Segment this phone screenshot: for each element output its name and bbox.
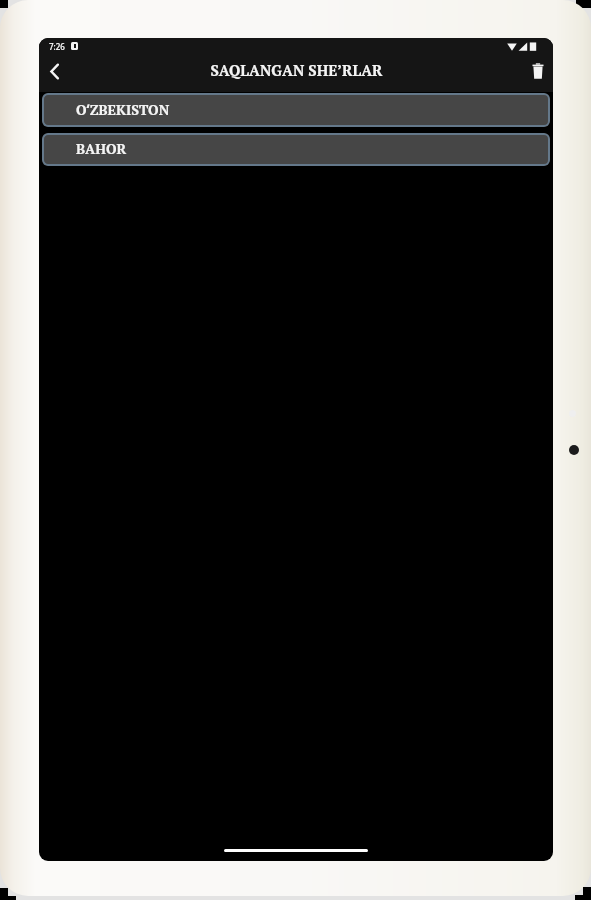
staticText: 7:26 [49, 41, 65, 52]
button[interactable]: BAHOR [42, 133, 550, 166]
button[interactable]: OʻZBEKISTON [42, 93, 550, 127]
staticText: OʻZBEKISTON [76, 100, 170, 119]
staticText: SAQLANGAN SHE’RLAR [210, 60, 383, 80]
staticText: BAHOR [76, 139, 127, 158]
button[interactable]: Back [39, 56, 69, 86]
button[interactable]: Delete [524, 57, 552, 85]
